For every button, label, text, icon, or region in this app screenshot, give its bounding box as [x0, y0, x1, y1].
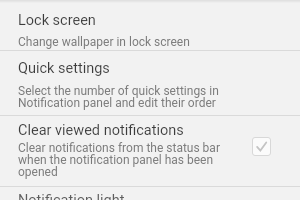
staticText: opened	[18, 165, 58, 179]
staticText: when the notification panel has been	[18, 153, 214, 167]
staticText: Notification light	[18, 192, 125, 200]
staticText: Select the number of quick settings in	[18, 84, 219, 98]
button[interactable]	[252, 137, 271, 156]
button[interactable]	[0, 116, 300, 186]
staticText: Lock screen	[18, 12, 96, 29]
staticText: Change wallpaper in lock screen	[18, 35, 190, 49]
staticText: Clear notifications from the status bar	[18, 141, 220, 155]
button[interactable]	[0, 187, 300, 200]
staticText: Quick settings	[18, 60, 110, 77]
staticText: Clear viewed notifications	[18, 122, 184, 139]
staticText: Notification panel and edit their order	[18, 96, 216, 110]
button[interactable]	[0, 51, 300, 115]
button[interactable]	[0, 0, 300, 50]
